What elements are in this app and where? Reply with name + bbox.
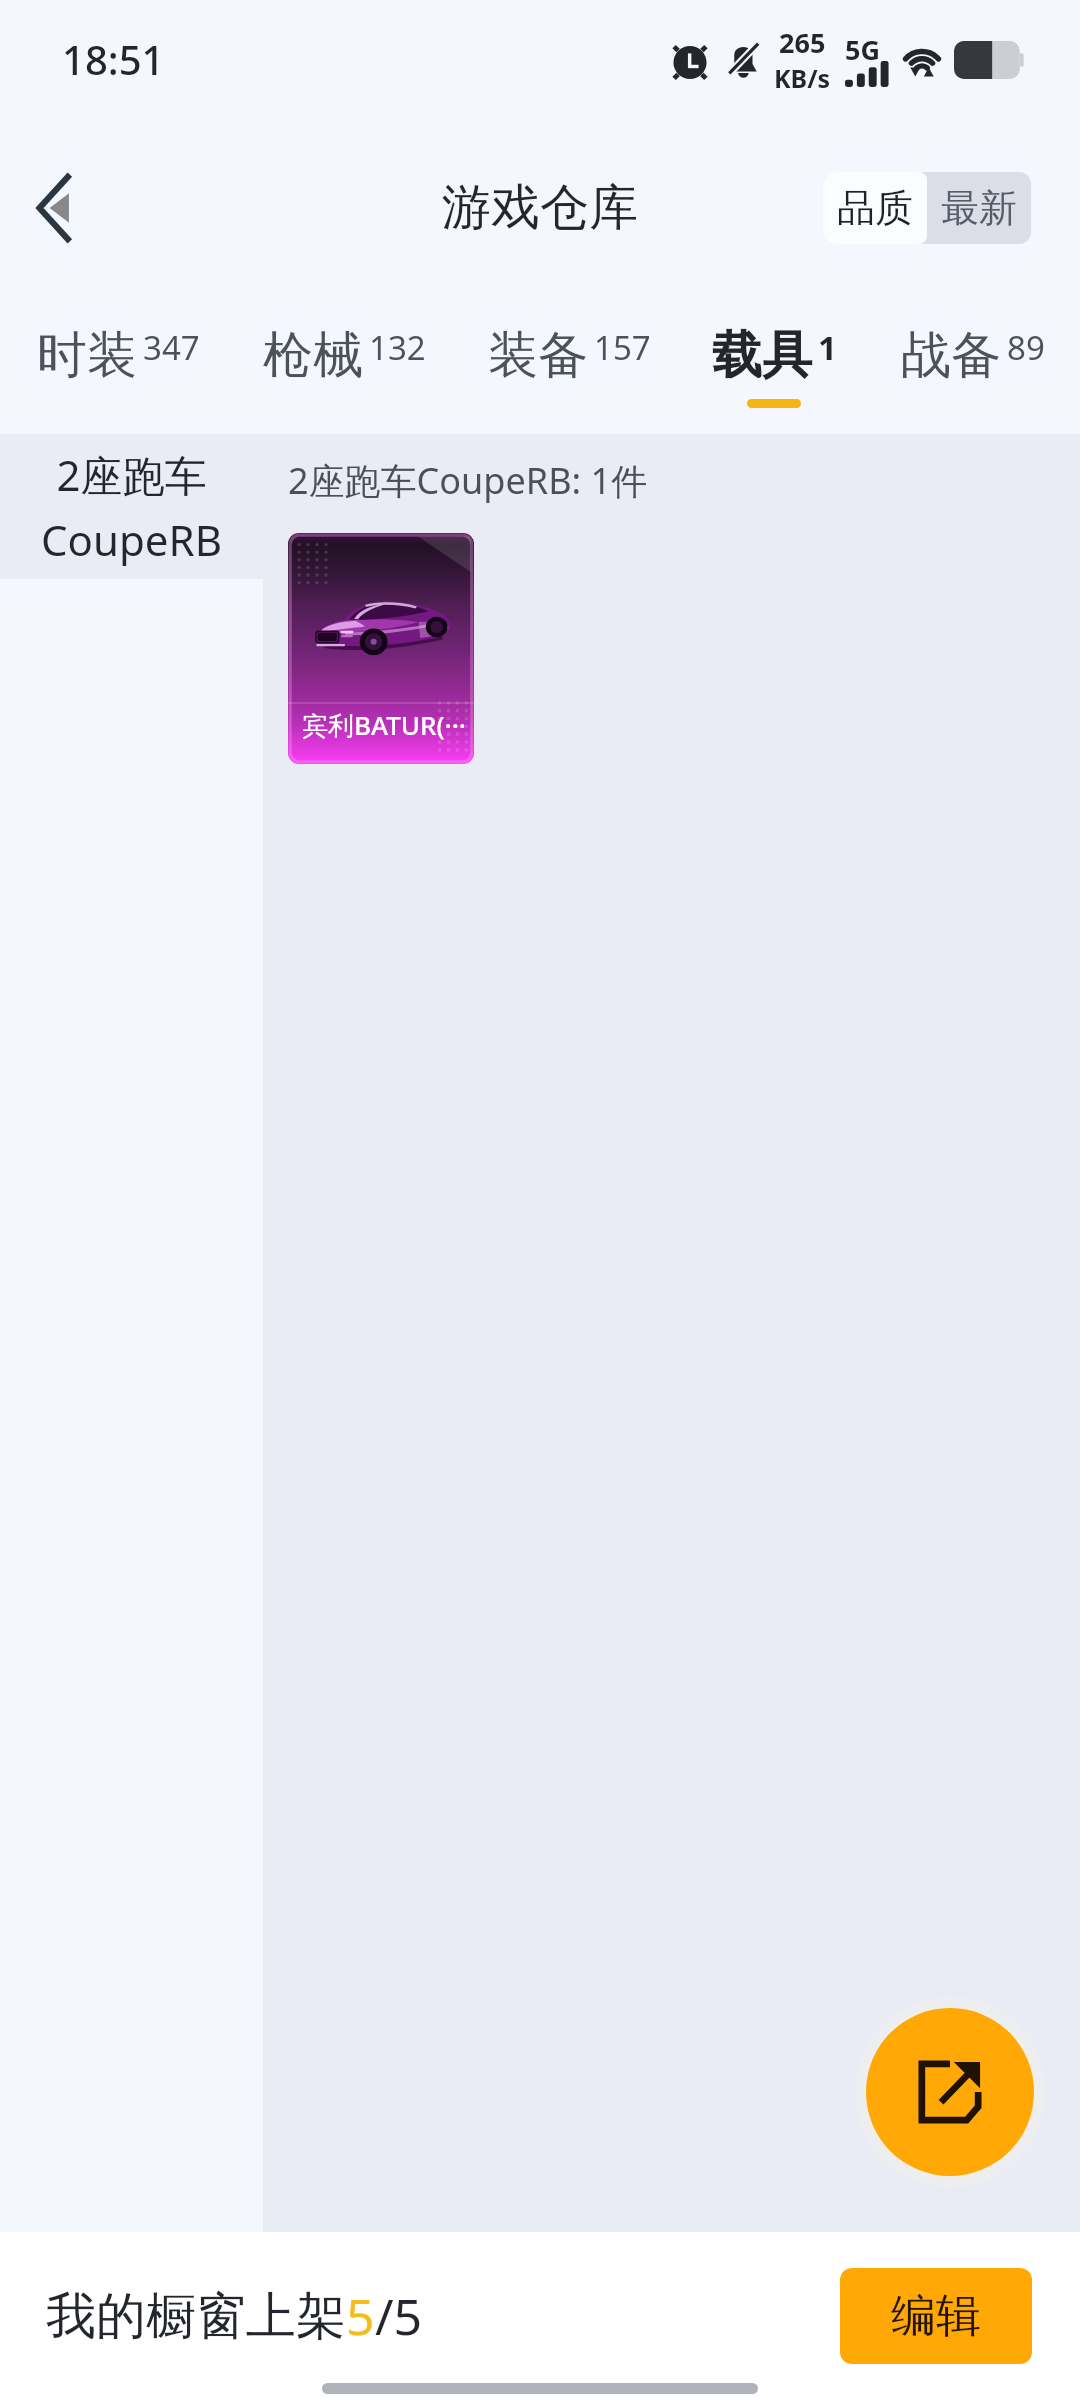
button[interactable]: Share xyxy=(866,2008,1034,2176)
staticText: KB/s xyxy=(774,61,831,95)
staticText: 宾利BATUR(··· xyxy=(302,707,466,743)
staticText: 2座跑车CoupeRB: 1件 xyxy=(288,456,648,505)
staticText: 我的橱窗上架 xyxy=(46,2285,346,2348)
staticText: 战备 xyxy=(901,324,1001,387)
staticText: 装备 xyxy=(488,324,588,387)
button[interactable]: Back xyxy=(2,156,106,260)
staticText: 枪械 xyxy=(263,324,363,387)
button[interactable]: 2座跑车CoupeRB xyxy=(0,434,263,579)
staticText: 最新 xyxy=(941,184,1017,232)
button[interactable]: 枪械 xyxy=(244,298,444,434)
staticText: 时装 xyxy=(37,324,137,387)
staticText: 265 xyxy=(779,24,826,61)
staticText: 5 xyxy=(346,2282,375,2350)
staticText: 游戏仓库 xyxy=(442,177,638,239)
staticText: /5 xyxy=(375,2282,423,2350)
button[interactable]: 宾利BATUR(··· xyxy=(288,533,474,764)
button[interactable]: 品质 xyxy=(823,172,927,244)
button[interactable]: 战备 xyxy=(873,298,1073,434)
staticText: 18:51 xyxy=(62,32,165,86)
button[interactable]: 装备 xyxy=(469,298,669,434)
staticText: 347 xyxy=(143,325,200,370)
staticText: 157 xyxy=(594,325,651,370)
staticText: 132 xyxy=(369,325,426,370)
button[interactable]: 载具 xyxy=(674,298,874,434)
staticText: 89 xyxy=(1007,325,1045,370)
staticText: 2座跑车CoupeRB xyxy=(22,446,241,568)
staticText: 编辑 xyxy=(891,2288,981,2345)
staticText: 品质 xyxy=(837,184,913,232)
staticText: 1 xyxy=(818,325,837,370)
staticText: 载具 xyxy=(712,324,812,387)
button[interactable]: 时装 xyxy=(18,298,218,434)
button[interactable]: 最新 xyxy=(927,172,1031,244)
button[interactable]: 编辑 xyxy=(840,2268,1032,2364)
staticText: 5G xyxy=(845,31,880,68)
